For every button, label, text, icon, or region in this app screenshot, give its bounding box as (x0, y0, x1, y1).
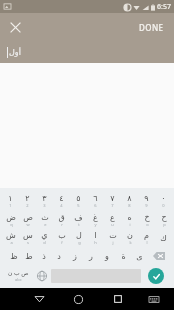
staticText: خ (144, 213, 150, 222)
staticText: o (146, 222, 149, 227)
staticText: ز (73, 252, 77, 261)
staticText: ١ (8, 194, 13, 203)
button[interactable]: Back (20, 288, 59, 310)
staticText: ص ب ن (8, 269, 29, 277)
staticText: 6 (94, 203, 97, 208)
staticText: ٤ (59, 194, 64, 203)
button[interactable]: ظ (6, 247, 21, 265)
staticText: و (105, 252, 109, 261)
button[interactable]: ي (36, 229, 53, 247)
button[interactable]: د (51, 247, 67, 265)
staticText: ٦ (93, 194, 98, 203)
button[interactable]: Close (5, 17, 25, 37)
staticText: ت (109, 231, 117, 240)
staticText: 5 (77, 203, 80, 208)
staticText: i (129, 222, 131, 227)
button[interactable]: ث (36, 210, 53, 229)
staticText: y (94, 222, 97, 227)
staticText: abc (15, 277, 22, 282)
button[interactable]: س (19, 229, 36, 247)
button[interactable]: ص (19, 210, 36, 229)
button[interactable]: ع (104, 210, 121, 229)
button[interactable]: ٣ (36, 191, 53, 210)
staticText: ٠ (161, 194, 166, 203)
button[interactable]: Enter (141, 265, 171, 286)
staticText: ث (41, 213, 49, 222)
button[interactable]: ٧ (104, 191, 121, 210)
button[interactable]: ح (155, 210, 172, 229)
staticText: k (129, 240, 132, 245)
button[interactable]: ٦ (87, 191, 104, 210)
button[interactable]: ه (121, 210, 138, 229)
staticText: 1 (9, 203, 12, 208)
button[interactable]: ش (2, 229, 19, 247)
staticText: ٨ (127, 194, 132, 203)
button[interactable]: ة (115, 247, 131, 265)
button[interactable]: ٩ (138, 191, 155, 210)
staticText: ض (6, 213, 16, 222)
staticText: ص (23, 213, 33, 222)
staticText: 3 (43, 203, 46, 208)
staticText: 0 (162, 203, 165, 208)
button[interactable]: ط (21, 247, 36, 265)
button[interactable]: ق (53, 210, 70, 229)
button[interactable]: ب (53, 229, 70, 247)
button[interactable]: Change language (33, 265, 51, 286)
button[interactable]: ت (104, 229, 121, 247)
staticText: w (26, 222, 30, 227)
staticText: ش (6, 231, 16, 240)
button[interactable]: ك (155, 229, 172, 247)
staticText: s (27, 240, 29, 245)
button[interactable]: ٠ (155, 191, 172, 210)
staticText: h (94, 240, 97, 245)
button[interactable]: ص ب ن (3, 265, 33, 286)
staticText: r (61, 222, 63, 227)
staticText: ٩ (144, 194, 149, 203)
staticText: ٥ (76, 194, 81, 203)
button[interactable]: ذ (36, 247, 51, 265)
button[interactable]: ٨ (121, 191, 138, 210)
staticText: a (10, 240, 13, 245)
button[interactable]: ض (2, 210, 19, 229)
staticText: ك (160, 234, 167, 243)
staticText: ع (110, 213, 115, 222)
button[interactable]: غ (87, 210, 104, 229)
staticText: 2 (26, 203, 29, 208)
staticText: ل (76, 231, 82, 240)
button[interactable]: و (99, 247, 115, 265)
button[interactable]: ى (131, 247, 147, 265)
button[interactable]: Backspace (147, 247, 171, 265)
staticText: 4 (60, 203, 63, 208)
staticText: ه (127, 213, 132, 222)
button[interactable]: ر (83, 247, 99, 265)
button[interactable]: ا (87, 229, 104, 247)
staticText: 6:57 (157, 2, 171, 12)
staticText: ذ (42, 252, 46, 261)
button[interactable]: م (138, 229, 155, 247)
button[interactable]: ٢ (19, 191, 36, 210)
button[interactable]: Home (59, 288, 98, 310)
button[interactable]: Switch keyboard (137, 288, 170, 310)
staticText: ى (136, 252, 143, 261)
staticText: ي (41, 231, 48, 240)
button[interactable]: ز (67, 247, 83, 265)
staticText: م (144, 231, 149, 240)
button[interactable]: ل (70, 229, 87, 247)
staticText: e (44, 222, 47, 227)
staticText: 7 (111, 203, 114, 208)
staticText: t (78, 222, 80, 227)
button[interactable]: ف (70, 210, 87, 229)
button[interactable]: Recent apps (98, 288, 137, 310)
button[interactable]: DONE (133, 17, 170, 38)
staticText: DONE (139, 22, 164, 33)
button[interactable]: ٤ (53, 191, 70, 210)
button[interactable]: ١ (2, 191, 19, 210)
staticText: j (112, 240, 114, 245)
button[interactable]: خ (138, 210, 155, 229)
button[interactable]: ٥ (70, 191, 87, 210)
staticText: د (57, 252, 61, 261)
staticText: ظ (10, 252, 18, 261)
button[interactable]: ن (121, 229, 138, 247)
staticText: p (163, 222, 166, 227)
